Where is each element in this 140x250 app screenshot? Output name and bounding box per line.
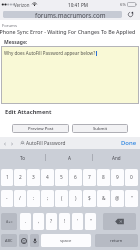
staticText: 5 [60, 174, 63, 181]
button[interactable]: ! [59, 213, 70, 230]
button[interactable]: A [46, 149, 93, 166]
button[interactable]: Next field [8, 140, 15, 147]
staticText: ' [77, 218, 79, 225]
button[interactable]: And [93, 149, 140, 166]
staticText: 6% [120, 2, 126, 8]
staticText: Submit [93, 126, 108, 132]
button[interactable]: ABC [1, 234, 17, 247]
button[interactable]: - [1, 190, 13, 207]
staticText: 6 [74, 174, 77, 181]
staticText: 9 [116, 174, 119, 181]
staticText: Message: [4, 39, 28, 46]
button[interactable]: space [41, 234, 91, 247]
button[interactable]: AutoFill Password [20, 139, 66, 147]
staticText: AutoFill Password [26, 140, 66, 146]
staticText: $ [88, 195, 91, 202]
button[interactable]: / [14, 190, 26, 207]
staticText: 4 [46, 174, 49, 181]
staticText: return [110, 238, 123, 244]
button[interactable]: " [125, 190, 138, 207]
button[interactable]: To [0, 149, 46, 166]
staticText: : [33, 195, 35, 202]
button[interactable]: return [95, 234, 138, 247]
button[interactable]: Why does AutoFill Password appear below? [1, 46, 139, 104]
staticText: ? [50, 218, 53, 225]
staticText: Forums [2, 23, 17, 29]
button[interactable]: Backspace [103, 213, 136, 230]
staticText: / [19, 195, 21, 202]
button[interactable]: ) [69, 190, 82, 207]
staticText: #+= [6, 219, 13, 224]
staticText: Verizon [14, 2, 30, 8]
staticText: 2 [19, 174, 22, 181]
button[interactable]: 8 [97, 169, 110, 186]
staticText: Why does AutoFill Password appear below? [4, 50, 96, 56]
staticText: And [112, 155, 121, 161]
staticText: ) [75, 195, 77, 202]
button[interactable]: : [27, 190, 40, 207]
staticText: iPhone Sync Error - Waiting For Changes … [0, 28, 136, 35]
button[interactable]: ' [72, 213, 83, 230]
staticText: 10:41 PM [68, 2, 88, 8]
button[interactable]: Dictation [30, 234, 39, 247]
staticText: ( [61, 195, 63, 202]
staticText: " [90, 218, 92, 225]
button[interactable]: ( [55, 190, 68, 207]
button[interactable]: @ [111, 190, 124, 207]
staticText: 0 [130, 174, 133, 181]
button[interactable]: Reload page [126, 10, 135, 19]
staticText: ABC [5, 238, 13, 243]
button[interactable]: Emoji keyboard [19, 234, 28, 247]
staticText: ! [64, 218, 66, 225]
staticText: 1 [6, 174, 9, 181]
staticText: Preview Post [28, 126, 54, 132]
staticText: Done [121, 139, 137, 147]
staticText: 3 [32, 174, 35, 181]
button[interactable]: Preview Post [12, 124, 69, 133]
staticText: , [38, 218, 40, 225]
staticText: @ [115, 195, 120, 202]
staticText: & [102, 195, 106, 202]
button[interactable]: forums.macrumors.com [3, 11, 122, 18]
button[interactable]: #+= [1, 213, 17, 230]
staticText: - [6, 195, 8, 202]
button[interactable]: $ [83, 190, 96, 207]
button[interactable]: 1 [1, 169, 13, 186]
button[interactable]: 3 [27, 169, 40, 186]
button[interactable]: 0 [125, 169, 138, 186]
button[interactable]: Done [120, 138, 138, 148]
staticText: . [25, 218, 27, 225]
button[interactable]: 7 [83, 169, 96, 186]
button[interactable]: , [33, 213, 44, 230]
button[interactable]: 4 [41, 169, 54, 186]
staticText: 8 [102, 174, 105, 181]
staticText: ; [47, 195, 49, 202]
staticText: Edit Attachment [5, 108, 52, 116]
button[interactable]: . [20, 213, 31, 230]
staticText: space [60, 238, 72, 244]
staticText: A [68, 155, 71, 161]
button[interactable]: & [97, 190, 110, 207]
button[interactable]: ; [41, 190, 54, 207]
button[interactable]: 6 [69, 169, 82, 186]
staticText: forums.macrumors.com [35, 11, 106, 18]
button[interactable]: 9 [111, 169, 124, 186]
button[interactable]: ? [46, 213, 57, 230]
button[interactable]: " [85, 213, 96, 230]
button[interactable]: 5 [55, 169, 68, 186]
staticText: To [20, 155, 26, 161]
button[interactable]: Submit [72, 124, 128, 133]
staticText: 7 [88, 174, 91, 181]
button[interactable]: 2 [14, 169, 26, 186]
staticText: " [131, 195, 133, 202]
button[interactable]: Previous field [1, 140, 8, 147]
